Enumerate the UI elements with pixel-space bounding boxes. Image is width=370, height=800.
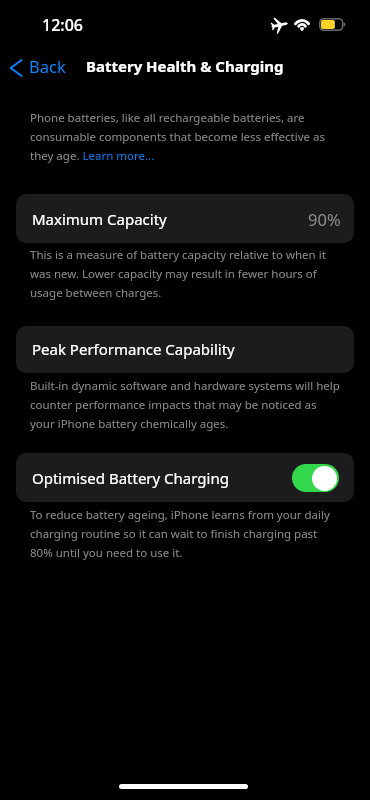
staticText: This is a measure of battery capacity re…	[30, 247, 326, 300]
staticText: 12:06	[42, 14, 83, 36]
button[interactable]: Optimised Battery Charging	[16, 453, 354, 502]
button[interactable]: Back	[4, 53, 74, 81]
staticText: 90%	[308, 208, 341, 230]
button[interactable]: Peak Performance Capability	[16, 326, 354, 373]
staticText: To reduce battery ageing, iPhone learns …	[30, 507, 330, 560]
staticText: Peak Performance Capability	[32, 339, 235, 359]
staticText: Back	[29, 55, 66, 77]
button[interactable]: Learn more...	[81, 150, 157, 168]
staticText: Built-in dynamic software and hardware s…	[30, 378, 340, 431]
staticText: Optimised Battery Charging	[32, 468, 229, 488]
staticText: Battery Health & Charging	[86, 56, 284, 76]
button[interactable]: Optimised Battery Charging	[292, 464, 339, 492]
staticText: Phone batteries, like all rechargeable b…	[30, 110, 325, 163]
staticText: Maximum Capacity	[32, 209, 167, 229]
button[interactable]: Maximum Capacity	[16, 194, 354, 243]
